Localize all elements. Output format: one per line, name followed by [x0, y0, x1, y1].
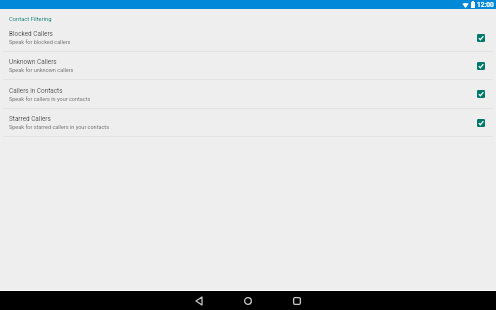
staticText: Blocked Callers [9, 30, 53, 38]
staticText: Speak for starred callers in your contac… [9, 124, 109, 130]
staticText: Callers in Contacts [9, 87, 63, 95]
button[interactable]: Unknown Callers [0, 52, 496, 80]
staticText: Contact Filtering [9, 16, 52, 23]
staticText: Speak for blocked callers [9, 39, 71, 45]
button[interactable]: Back [190, 292, 208, 310]
button[interactable]: Blocked Callers [0, 24, 496, 52]
button[interactable]: Recents [288, 292, 306, 310]
staticText: 12:00 [477, 1, 494, 9]
staticText: Starred Callers [9, 115, 51, 123]
staticText: Speak for unknown callers [9, 67, 74, 73]
button[interactable]: Starred Callers [0, 109, 496, 137]
button[interactable]: Home [239, 292, 257, 310]
staticText: Speak for callers in your contacts [9, 96, 91, 102]
other: Toggle [477, 90, 485, 98]
staticText: Unknown Callers [9, 58, 57, 66]
other: Toggle [477, 119, 485, 127]
button[interactable]: Callers in Contacts [0, 80, 496, 109]
other: Toggle [477, 34, 485, 42]
other: Toggle [477, 62, 485, 70]
